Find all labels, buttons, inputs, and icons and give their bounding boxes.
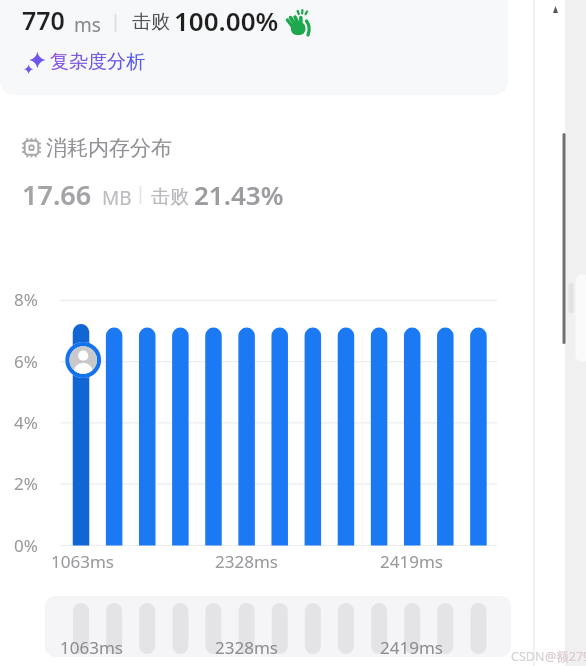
staticText: 4% bbox=[14, 411, 38, 434]
staticText: 21.43% bbox=[194, 177, 284, 212]
staticText: 770 bbox=[22, 3, 65, 37]
staticText: MB bbox=[102, 185, 132, 211]
staticText: 2328ms bbox=[215, 636, 278, 659]
staticText: 复杂度分析 bbox=[50, 50, 145, 74]
staticText: 1063ms bbox=[51, 550, 114, 573]
staticText: 17.66 bbox=[22, 176, 92, 213]
staticText: @额279 bbox=[545, 648, 586, 665]
staticText: 6% bbox=[14, 350, 38, 373]
staticText: 0% bbox=[14, 534, 38, 557]
staticText: 消耗内存分布 bbox=[46, 135, 172, 161]
staticText: 击败 bbox=[132, 10, 170, 34]
staticText: ms bbox=[74, 12, 101, 38]
staticText: 击败 bbox=[151, 185, 189, 209]
staticText: 2328ms bbox=[215, 550, 278, 573]
staticText: 2419ms bbox=[380, 636, 443, 659]
button[interactable]: 复杂度分析 bbox=[24, 50, 145, 74]
staticText: 2419ms bbox=[380, 550, 443, 573]
staticText: 1063ms bbox=[60, 636, 123, 659]
staticText: CSDN bbox=[511, 648, 548, 665]
staticText: 2% bbox=[14, 472, 38, 495]
staticText: 100.00% bbox=[174, 3, 279, 38]
staticText: 8% bbox=[14, 288, 38, 311]
